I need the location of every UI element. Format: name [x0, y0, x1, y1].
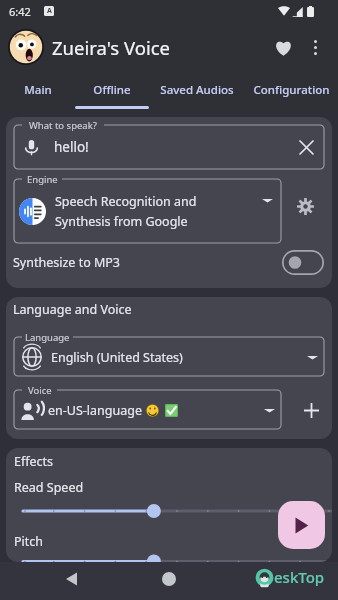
staticText: Offline [93, 82, 131, 98]
staticText: Engine [27, 173, 58, 185]
staticText: Saved Audios [160, 82, 234, 98]
button[interactable]: Main [0, 72, 75, 112]
button[interactable]: Add voice [298, 397, 324, 423]
staticText: Synthesize to MP3 [13, 254, 121, 271]
staticText: English (United States) [51, 349, 183, 366]
button[interactable]: English (United States) [14, 337, 324, 376]
staticText: 6:42 [9, 4, 31, 19]
staticText: What to speak? [29, 119, 97, 131]
button[interactable]: Saved Audios [149, 72, 245, 112]
button[interactable]: Clear [294, 135, 318, 159]
staticText: en-US-language [48, 402, 142, 419]
staticText: Language and Voice [13, 301, 132, 318]
button[interactable]: Play [278, 501, 325, 549]
staticText: Speech Recognition and [55, 193, 197, 210]
button[interactable]: Configuration [245, 72, 338, 112]
button[interactable]: Engine settings [291, 192, 319, 220]
button[interactable]: en-US-language [14, 390, 281, 429]
staticText: Main [24, 82, 52, 98]
staticText: eskTop [274, 567, 325, 587]
button[interactable]: Synthesize to MP3 [14, 247, 324, 277]
staticText: Language [25, 331, 70, 343]
button[interactable]: Speech Recognition and [14, 179, 281, 243]
button[interactable]: Favorite [266, 30, 300, 64]
staticText: Pitch [14, 533, 44, 550]
staticText: Voice [28, 384, 52, 396]
button[interactable] [23, 561, 331, 562]
staticText: Read Speed [14, 479, 84, 496]
staticText: Effects [14, 453, 54, 470]
button[interactable]: Home [156, 566, 182, 592]
button[interactable]: More options [300, 32, 330, 62]
button[interactable]: Back [58, 566, 84, 592]
staticText: A [47, 6, 52, 16]
button[interactable]: hello! [14, 125, 324, 169]
staticText: Zueira's Voice [52, 35, 170, 60]
staticText: hello! [54, 138, 89, 156]
button[interactable]: Offline [75, 72, 149, 112]
staticText: Configuration [253, 82, 330, 98]
button[interactable] [23, 503, 331, 519]
staticText: Synthesis from Google [55, 213, 188, 230]
